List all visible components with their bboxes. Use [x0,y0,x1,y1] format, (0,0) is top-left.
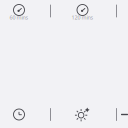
button[interactable]: Brightness [68,104,96,124]
button[interactable]: 120 mins [60,0,104,22]
button[interactable]: Clock [5,104,33,124]
staticText: 120 mins [71,14,93,21]
button[interactable]: 60 mins [0,0,41,22]
button[interactable]: More [121,107,128,121]
staticText: 60 mins [9,14,28,21]
